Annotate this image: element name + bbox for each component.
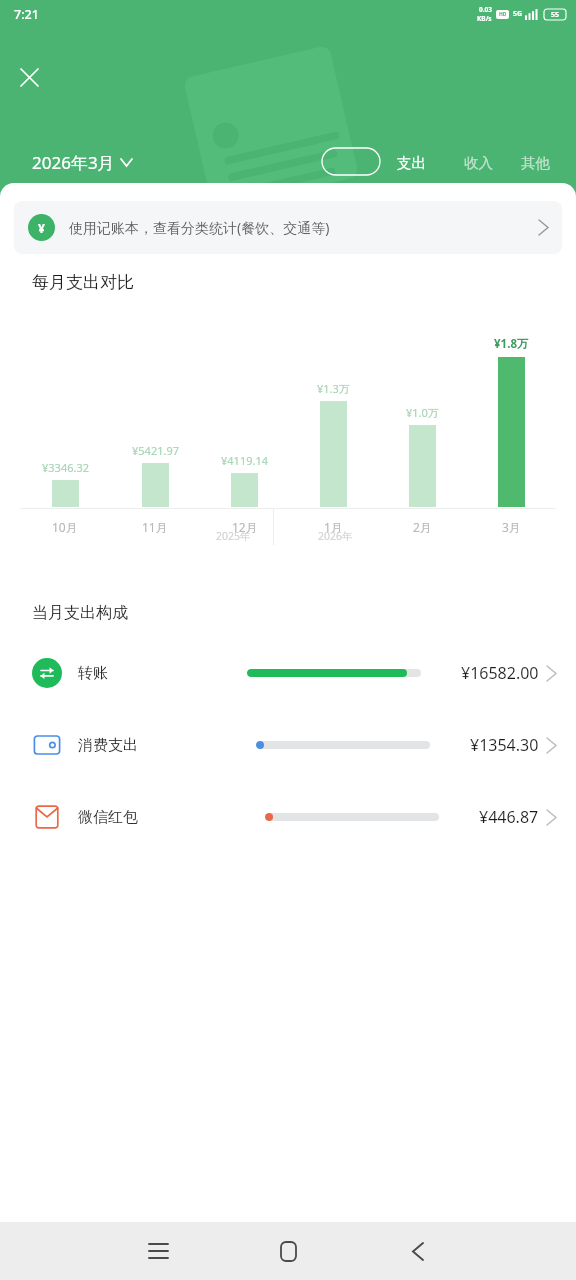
staticText: 7:21 — [14, 6, 39, 23]
staticText: 0.03 — [479, 5, 492, 14]
staticText: ¥1.0万 — [406, 405, 439, 420]
staticText: 2025年 — [216, 529, 251, 543]
button[interactable]: 转账 — [0, 637, 576, 709]
staticText: 12月 — [232, 519, 258, 535]
staticText: KB/s — [477, 14, 492, 23]
staticText: 其他 — [521, 154, 550, 172]
button[interactable]: 2026年3月 — [32, 147, 132, 178]
button[interactable]: 其他 — [521, 150, 550, 176]
staticText: ¥3346.32 — [42, 460, 89, 475]
staticText: 使用记账本，查看分类统计(餐饮、交通等) — [69, 218, 330, 237]
staticText: ¥1.3万 — [317, 381, 350, 396]
staticText: 支出 — [397, 154, 426, 172]
staticText: ¥5421.97 — [132, 443, 179, 458]
staticText: ¥446.87 — [479, 806, 539, 828]
staticText: ¥1.8万 — [494, 336, 529, 352]
button[interactable]: ¥ — [14, 201, 562, 254]
button[interactable]: 支出 — [383, 150, 440, 176]
staticText: 3月 — [502, 519, 521, 535]
staticText: HD — [499, 11, 507, 18]
staticText: ¥1354.30 — [470, 734, 539, 756]
button[interactable]: 微信红包 — [0, 781, 576, 853]
button[interactable]: 主页 — [260, 1223, 316, 1279]
button[interactable]: 收入 — [464, 150, 493, 176]
staticText: 转账 — [78, 664, 108, 683]
staticText: ¥16582.00 — [461, 662, 539, 684]
staticText: 2026年3月 — [32, 151, 115, 174]
button[interactable]: 关闭 — [8, 56, 50, 98]
button[interactable]: 消费支出 — [0, 709, 576, 781]
staticText: 55 — [551, 10, 560, 20]
button[interactable]: 最近任务 — [130, 1223, 186, 1279]
staticText: 微信红包 — [78, 808, 138, 827]
staticText: ¥4119.14 — [221, 453, 268, 468]
staticText: 当月支出构成 — [32, 603, 128, 623]
staticText: 11月 — [142, 519, 168, 535]
staticText: 10月 — [52, 519, 78, 535]
button[interactable]: 返回 — [390, 1223, 446, 1279]
staticText: 2月 — [413, 519, 432, 535]
staticText: 2026年 — [318, 529, 353, 543]
staticText: ¥ — [38, 220, 45, 236]
staticText: 收入 — [464, 154, 493, 172]
staticText: ¥ — [32, 286, 48, 324]
staticText: 18383.17 — [52, 271, 219, 324]
staticText: 1月 — [324, 519, 343, 535]
staticText: 5G — [513, 9, 523, 19]
staticText: 消费支出 — [78, 736, 138, 755]
staticText: 共支出27笔，合计 — [32, 229, 138, 247]
staticText: 每月支出对比 — [32, 272, 134, 293]
